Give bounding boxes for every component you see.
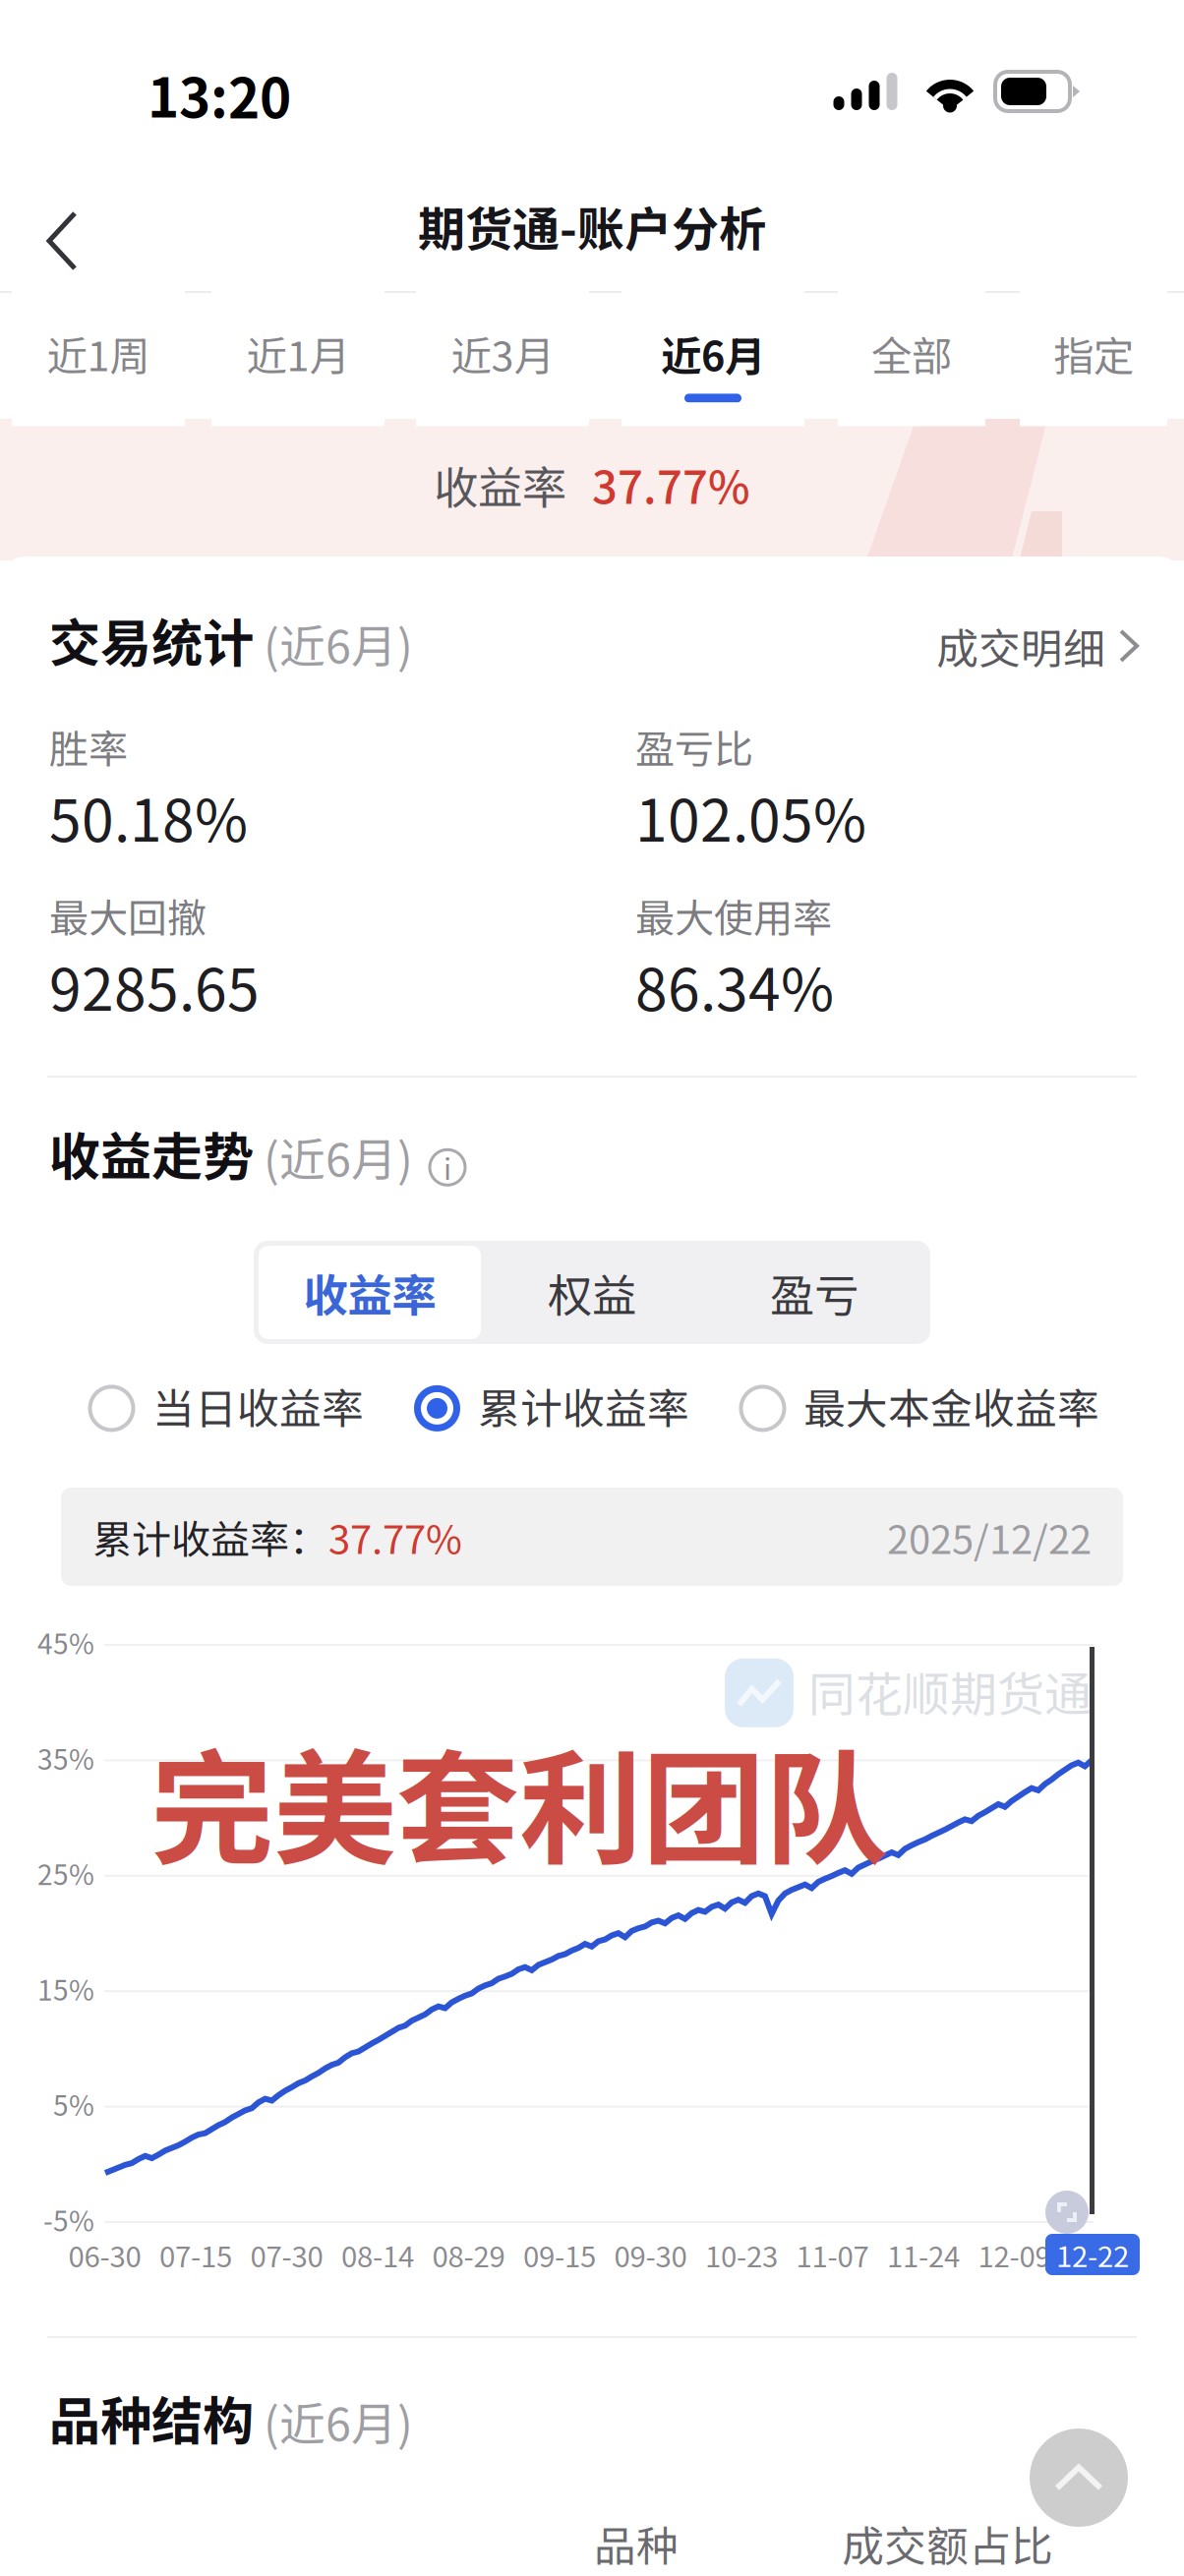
staticText: 35% — [37, 1738, 94, 1778]
button[interactable]: 近1月 — [211, 295, 385, 419]
staticText: 权益 — [548, 1260, 636, 1325]
staticText: 50.18% — [49, 775, 248, 858]
staticText: 指定 — [1053, 324, 1134, 383]
button[interactable]: 累计收益率 — [414, 1376, 689, 1441]
button[interactable]: 成交明细 — [936, 615, 1184, 676]
staticText: (近6月) — [254, 2388, 413, 2454]
staticText: 成交额占比 — [842, 2513, 1053, 2574]
button[interactable]: 近1周 — [12, 295, 185, 419]
staticText: 最大本金收益率 — [803, 1376, 1099, 1436]
staticText: 累计收益率： — [92, 1508, 328, 1565]
staticText: 2025/12/22 — [887, 1508, 1092, 1565]
button[interactable]: 权益 — [481, 1246, 703, 1339]
button[interactable]: 收益率 — [259, 1246, 481, 1339]
staticText: 06-30 — [68, 2234, 141, 2276]
staticText: 09-30 — [614, 2234, 687, 2276]
staticText: 86.34% — [635, 944, 834, 1027]
button[interactable]: 全屏 — [1045, 2191, 1089, 2234]
staticText: 45% — [37, 1622, 94, 1662]
staticText: (近6月) — [254, 1124, 413, 1190]
staticText: -5% — [43, 2199, 94, 2239]
staticText: 期货通-账户分析 — [418, 192, 766, 260]
staticText: 08-14 — [341, 2234, 414, 2276]
staticText: 5% — [53, 2084, 94, 2124]
staticText: i — [444, 1147, 451, 1188]
staticText: 累计收益率 — [478, 1376, 689, 1436]
staticText: 品种 — [594, 2513, 679, 2574]
staticText: 盈亏比 — [635, 718, 753, 775]
staticText: 完美套利团队 — [150, 1711, 888, 1889]
staticText: 同花顺期货通 — [808, 1657, 1092, 1725]
staticText: 全部 — [871, 324, 952, 383]
staticText: 胜率 — [49, 718, 128, 775]
staticText: 9285.65 — [49, 944, 260, 1027]
staticText: 15% — [37, 1969, 94, 2008]
staticText: 07-15 — [159, 2234, 232, 2276]
staticText: 当日收益率 — [152, 1376, 364, 1436]
staticText: (近6月) — [254, 610, 413, 677]
staticText: 近6月 — [661, 324, 765, 383]
staticText: 102.05% — [635, 775, 866, 858]
button[interactable]: 最大本金收益率 — [740, 1376, 1099, 1441]
staticText: 12-09 — [978, 2234, 1051, 2276]
staticText: 成交明细 — [936, 615, 1105, 676]
staticText: 近3月 — [451, 324, 554, 383]
button[interactable]: 近3月 — [416, 295, 589, 419]
staticText: 盈亏 — [770, 1260, 858, 1325]
staticText: 12-22 — [1056, 2234, 1129, 2275]
staticText: 37.77% — [328, 1508, 462, 1565]
staticText: 11-07 — [796, 2234, 869, 2276]
staticText: 交易统计 — [49, 603, 254, 677]
staticText: 收益率 — [434, 452, 566, 517]
staticText: 37.77% — [592, 452, 750, 517]
button[interactable]: 全部 — [838, 295, 985, 419]
button[interactable]: 当日收益率 — [89, 1376, 364, 1441]
staticText: 最大使用率 — [635, 887, 832, 944]
button[interactable]: 回到顶部 — [1030, 2429, 1128, 2527]
staticText: 09-15 — [523, 2234, 596, 2276]
staticText: 品种结构 — [49, 2380, 254, 2454]
staticText: 25% — [37, 1853, 94, 1893]
staticText: 收益走势 — [49, 1116, 254, 1190]
staticText: 10-23 — [705, 2234, 778, 2276]
staticText: 07-30 — [250, 2234, 323, 2276]
staticText: 收益率 — [303, 1260, 436, 1325]
button[interactable]: 指定 — [1020, 295, 1167, 419]
staticText: 近1周 — [47, 324, 150, 383]
button[interactable]: 盈亏 — [703, 1246, 925, 1339]
staticText: 11-24 — [887, 2234, 960, 2276]
staticText: 08-29 — [432, 2234, 505, 2276]
button[interactable]: 近6月 — [622, 295, 804, 419]
staticText: 近1月 — [246, 324, 350, 383]
button[interactable]: 返回 — [0, 185, 120, 297]
staticText: 13:20 — [148, 55, 291, 133]
staticText: 最大回撤 — [49, 887, 207, 944]
